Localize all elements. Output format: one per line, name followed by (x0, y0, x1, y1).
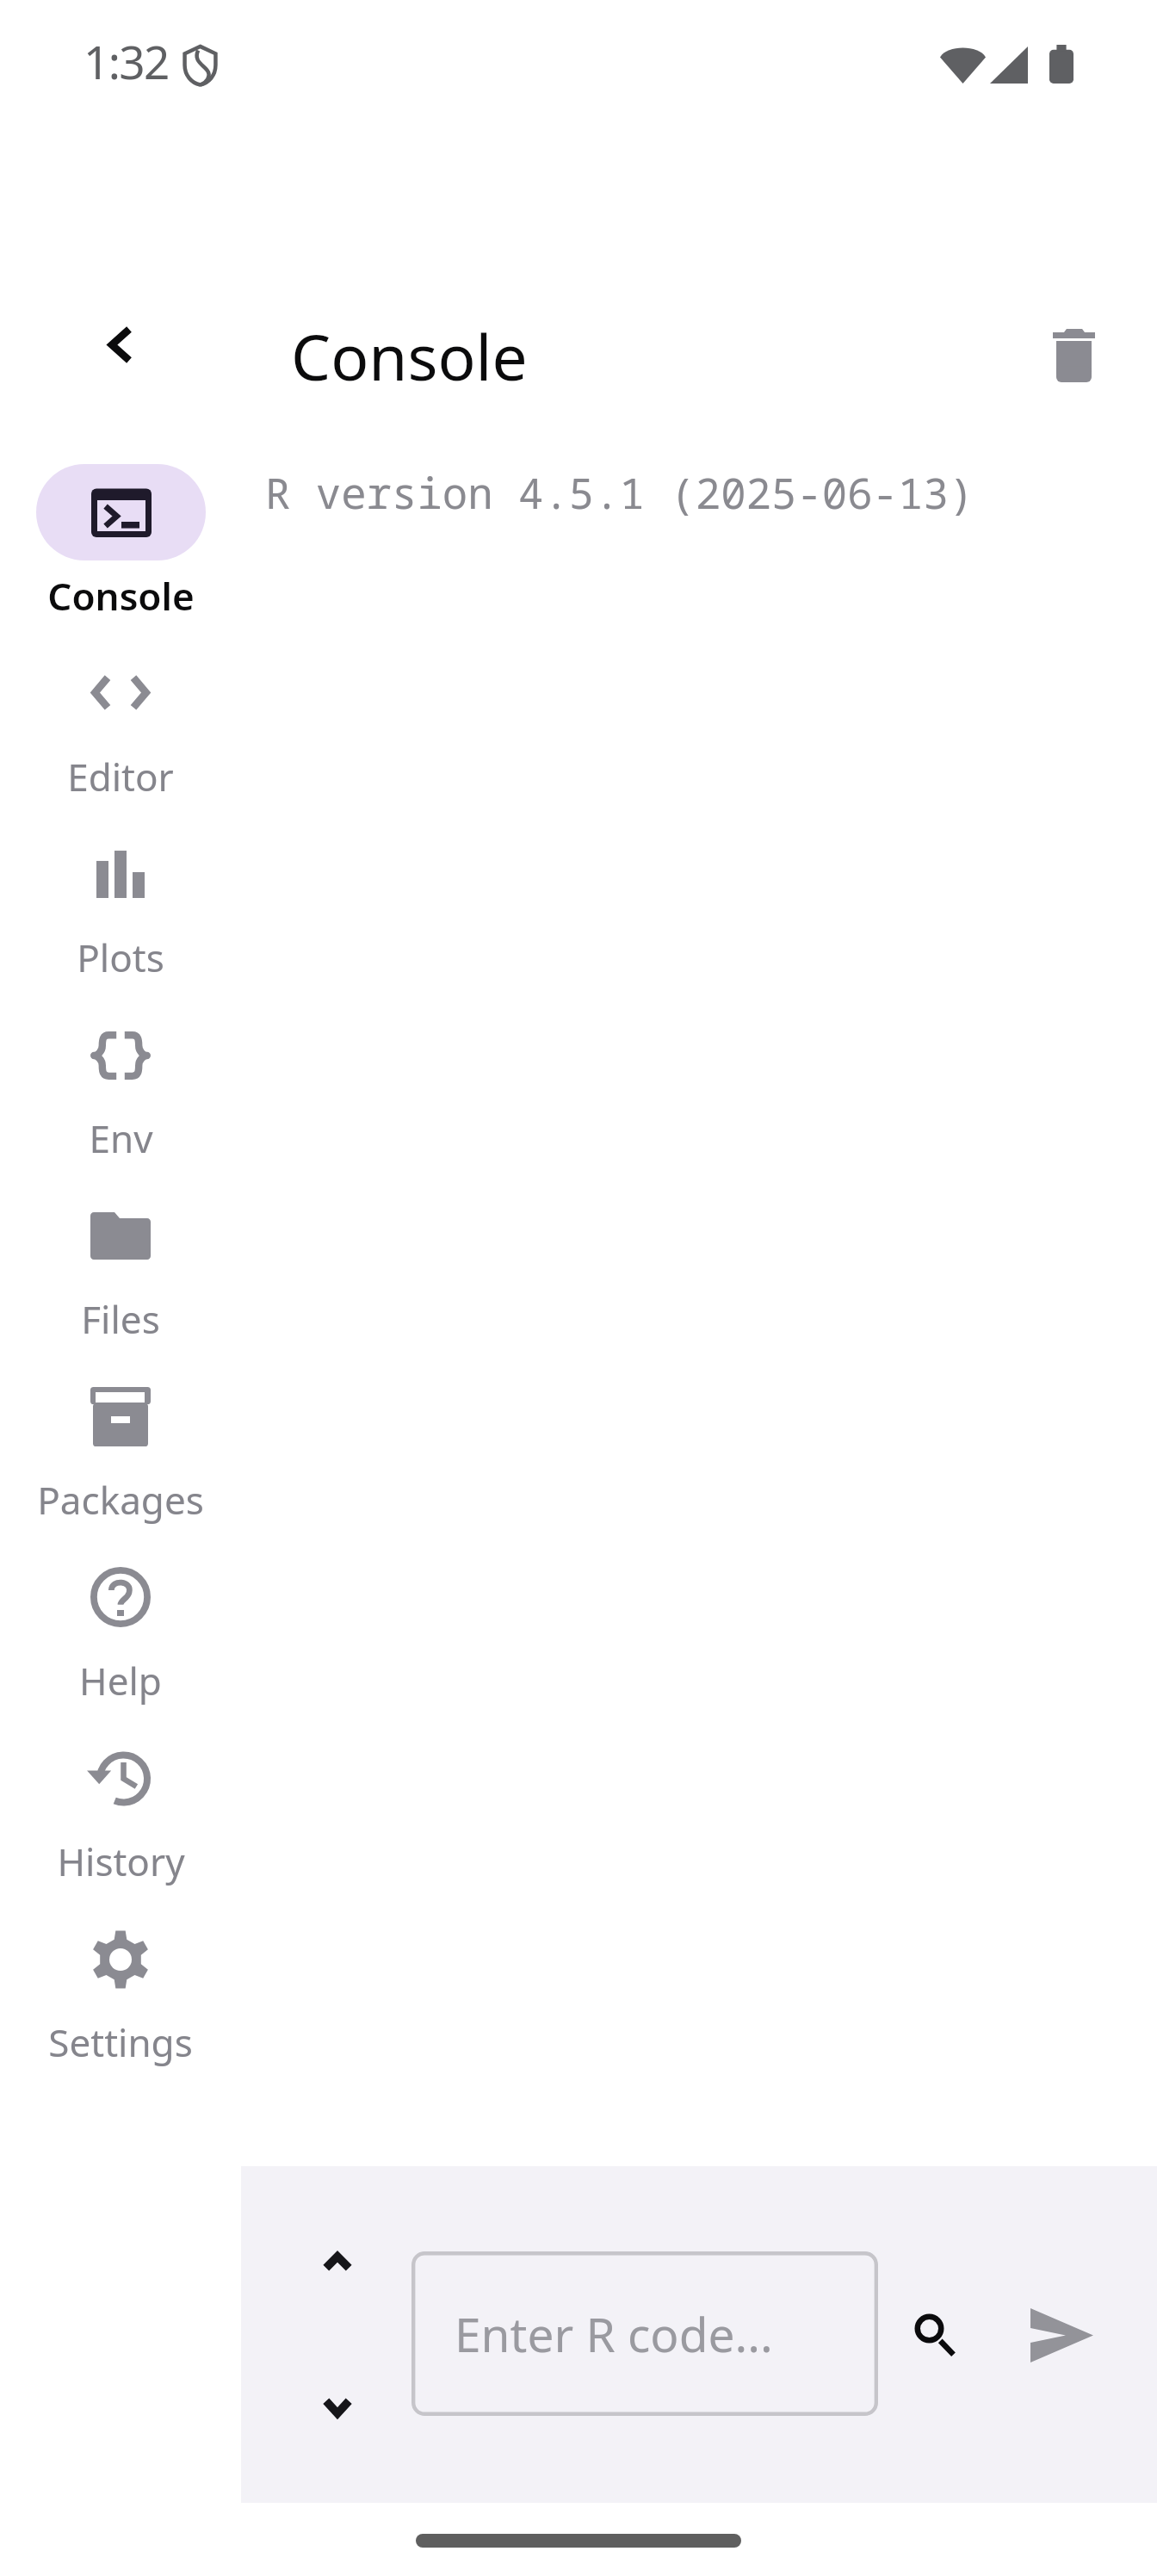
staticText: Env (89, 1112, 153, 1164)
staticText: Console (47, 570, 195, 622)
button[interactable]: Files (0, 1187, 241, 1347)
button[interactable]: Console (0, 464, 241, 623)
button[interactable]: Plots (0, 826, 241, 985)
button[interactable]: Help (0, 1549, 241, 1708)
staticText: 1:32 (84, 30, 169, 92)
button[interactable]: Clear console (1026, 308, 1121, 403)
button[interactable]: Send (1019, 2293, 1104, 2377)
staticText: History (57, 1836, 185, 1887)
button[interactable]: Search (893, 2293, 977, 2377)
button[interactable]: Editor (0, 645, 241, 804)
button[interactable]: Enter R code... (411, 2251, 878, 2416)
button[interactable]: Env (0, 1006, 241, 1166)
button[interactable]: Next command (295, 2365, 380, 2449)
staticText: Settings (48, 2016, 193, 2068)
button[interactable]: Packages (0, 1368, 241, 1527)
button[interactable]: History (0, 1730, 241, 1889)
button[interactable]: Back (72, 297, 167, 392)
staticText: Help (79, 1655, 162, 1706)
staticText: Editor (67, 751, 174, 802)
staticText: Enter R code... (455, 2301, 773, 2366)
staticText: Files (81, 1293, 160, 1345)
staticText: Console (291, 313, 528, 399)
button[interactable]: Previous command (295, 2220, 380, 2304)
button[interactable]: Settings (0, 1910, 241, 2070)
staticText: Packages (37, 1474, 204, 1526)
staticText: R version 4.5.1 (2025-06-13) (265, 464, 974, 522)
staticText: Plots (77, 932, 164, 983)
